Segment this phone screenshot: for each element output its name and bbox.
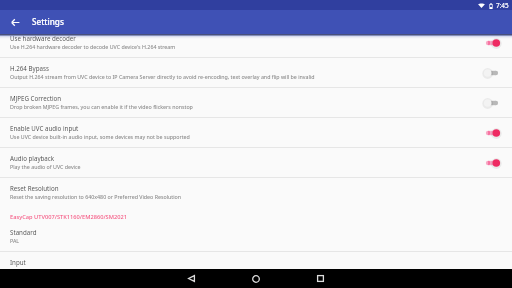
button[interactable]: Navigate up — [6, 13, 24, 31]
button[interactable]: Audio playback — [0, 148, 512, 177]
staticText: Standard — [10, 228, 37, 236]
staticText: Use hardware decoder — [10, 34, 76, 42]
staticText: 7:45 — [496, 1, 509, 10]
staticText: Reset Resolution — [10, 184, 59, 192]
staticText: H.264 Bypass — [10, 64, 49, 72]
staticText: Reset the saving resolution to 640x480 o… — [10, 193, 182, 200]
button[interactable]: Enable UVC audio input — [0, 118, 512, 147]
staticText: Enable UVC audio input — [10, 124, 79, 132]
button[interactable]: Switch on — [480, 123, 504, 143]
button[interactable]: H.264 Bypass — [0, 58, 512, 87]
button[interactable]: Home — [244, 269, 268, 288]
staticText: Play the audio of UVC device — [10, 163, 81, 170]
button[interactable]: Switch on — [480, 153, 504, 173]
button[interactable]: Reset Resolution — [0, 178, 512, 207]
button[interactable]: Input — [0, 252, 512, 281]
button[interactable]: Switch off — [480, 63, 504, 83]
button[interactable]: MJPEG Correction — [0, 88, 512, 117]
staticText: Use UVC device built-in audio input, som… — [10, 133, 190, 140]
button[interactable]: Use hardware decoder — [0, 28, 512, 57]
staticText: Input — [10, 258, 26, 266]
staticText: PAL — [10, 237, 20, 244]
staticText: Output H.264 stream from UVC device to I… — [10, 73, 315, 80]
button[interactable]: Switch off — [480, 93, 504, 113]
staticText: MJPEG Correction — [10, 94, 62, 102]
button[interactable]: Recent apps — [308, 269, 332, 288]
staticText: Settings — [32, 16, 64, 27]
staticText: Use H.264 hardware decoder to decode UVC… — [10, 43, 176, 50]
button[interactable]: Switch on — [480, 33, 504, 53]
staticText: Audio playback — [10, 154, 55, 162]
button[interactable]: Back — [179, 269, 203, 288]
staticText: Drop broken MJPEG frames, you can enable… — [10, 103, 193, 110]
button[interactable]: Standard — [0, 222, 512, 251]
staticText: EasyCap UTV007/STK1160/EM2860/SM2021 — [10, 213, 127, 221]
